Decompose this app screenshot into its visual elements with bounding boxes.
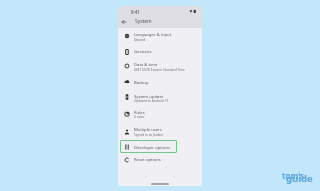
staticText: Gboard (134, 38, 146, 42)
staticText: 0 rules (134, 115, 145, 119)
button[interactable]: Reset options (118, 152, 202, 168)
staticText: Multiple users (134, 127, 162, 133)
staticText: Backup (134, 80, 149, 86)
staticText: Gestures (134, 49, 152, 55)
button[interactable]: Developer options (118, 139, 202, 155)
button[interactable]: Rules (118, 106, 202, 122)
button[interactable]: Gestures (118, 43, 202, 59)
staticText: Languages & input (134, 32, 172, 38)
button[interactable]: System update (118, 88, 202, 104)
staticText: Date & time (134, 62, 158, 68)
button[interactable]: Date and time (118, 58, 202, 74)
staticText: Updated to Android 13 (134, 99, 169, 103)
staticText: System update (134, 94, 164, 100)
button[interactable]: Backup (118, 73, 202, 89)
button[interactable]: Back (118, 16, 130, 28)
button[interactable]: Languages and input (118, 28, 202, 44)
staticText: 9:41 (131, 9, 140, 15)
staticText: guide (286, 172, 313, 185)
staticText: GMT-05:00 Eastern Standard Time (134, 68, 185, 72)
staticText: System (135, 18, 152, 25)
staticText: tom's (282, 170, 305, 181)
staticText: Developer options (134, 145, 171, 151)
button[interactable]: Multiple users (118, 124, 202, 140)
staticText: Rules (134, 110, 145, 116)
staticText: Reset options (134, 157, 161, 163)
staticText: Signed in as Jordan (134, 133, 163, 137)
